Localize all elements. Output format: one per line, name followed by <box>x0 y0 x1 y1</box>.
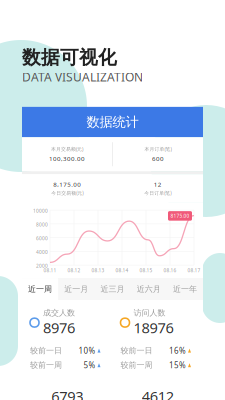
staticText: 18976 <box>133 318 173 337</box>
staticText: 08.14 <box>115 267 128 274</box>
button[interactable]: 近一月 <box>58 278 94 300</box>
staticText: 8976 <box>43 318 75 337</box>
staticText: 数据统计 <box>86 114 138 130</box>
staticText: 近一月 <box>64 284 88 294</box>
staticText: 2000 <box>36 263 48 269</box>
button[interactable]: 近六月 <box>131 278 167 300</box>
staticText: 6793 <box>51 386 83 400</box>
staticText: 08.16 <box>163 267 176 274</box>
staticText: 访问人数 <box>133 308 165 318</box>
button[interactable]: 近一年 <box>167 278 203 300</box>
button[interactable]: 近三月 <box>94 278 131 300</box>
staticText: 近一年 <box>173 284 197 294</box>
staticText: 本月交易额(元) <box>51 146 83 152</box>
staticText: 08.13 <box>91 267 104 274</box>
staticText: DATA VISUALIZATION <box>22 69 143 85</box>
staticText: 近一周 <box>28 284 52 294</box>
staticText: 08.12 <box>67 267 80 274</box>
button[interactable]: 近一周 <box>22 278 58 300</box>
staticText: 100,300.00 <box>49 154 85 163</box>
staticText: 较前一周 <box>30 360 62 370</box>
staticText: 8,175.00 <box>53 180 81 189</box>
staticText: 8175.00 <box>170 213 189 219</box>
staticText: 成交人数 <box>43 308 75 318</box>
staticText: 本月订单(笔) <box>144 146 171 152</box>
staticText: 数据可视化 <box>22 46 117 69</box>
staticText: 较前一周 <box>120 360 152 370</box>
staticText: 16% <box>169 345 186 356</box>
staticText: 10000 <box>33 208 48 214</box>
staticText: 6000 <box>36 235 48 242</box>
staticText: 较前一日 <box>120 346 152 355</box>
staticText: 4612 <box>142 386 174 400</box>
staticText: 08.11 <box>43 267 56 274</box>
staticText: 近三月 <box>100 284 124 294</box>
staticText: 5% <box>83 360 95 370</box>
staticText: 4000 <box>36 249 48 255</box>
staticText: 12 <box>154 180 162 189</box>
staticText: 08.15 <box>139 267 152 274</box>
staticText: 近六月 <box>137 284 161 294</box>
staticText: 15% <box>169 360 186 370</box>
staticText: 10% <box>78 345 95 356</box>
staticText: 08.17 <box>187 267 200 274</box>
staticText: 较前一日 <box>30 346 62 355</box>
staticText: 今日订单(笔) <box>144 190 171 196</box>
staticText: 8000 <box>36 221 48 228</box>
staticText: 今日交易额(元) <box>51 190 83 196</box>
staticText: 600 <box>152 154 164 163</box>
